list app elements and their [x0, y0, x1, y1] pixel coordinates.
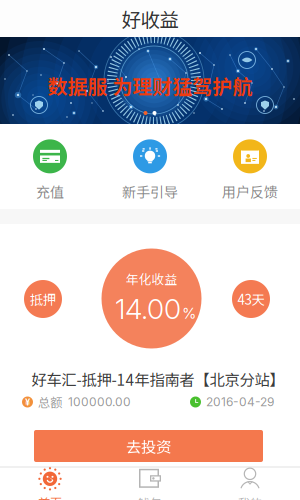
button[interactable]: 抵押	[24, 280, 62, 318]
staticText: 数据服 为理财猛驾护航	[47, 71, 252, 100]
button[interactable]: 我的	[200, 468, 300, 500]
staticText: %	[182, 304, 196, 322]
staticText: 抵押	[30, 289, 56, 309]
staticText: 充值	[36, 181, 64, 202]
staticText: 新手引导	[122, 181, 178, 202]
staticText: 用户反馈	[222, 181, 278, 202]
button[interactable]: 充值	[0, 124, 100, 209]
button[interactable]: 首页	[0, 468, 100, 500]
staticText: 首页	[38, 494, 62, 500]
staticText: 年化收益	[125, 269, 177, 288]
staticText: 我的	[238, 494, 262, 500]
staticText: 100000.00	[68, 395, 131, 409]
button[interactable]: 43天	[232, 280, 270, 318]
staticText: 好车汇-抵押-14年指南者【北京分站】	[31, 368, 284, 390]
button[interactable]: 用户反馈	[200, 124, 300, 209]
staticText: 2016-04-29	[206, 395, 274, 409]
staticText: 去投资	[126, 435, 171, 457]
staticText: 14.00	[115, 292, 181, 326]
staticText: ¥	[25, 396, 30, 408]
staticText: 总额	[38, 393, 62, 411]
button[interactable]: 钱包	[100, 468, 200, 500]
button[interactable]: 去投资	[34, 430, 263, 462]
button[interactable]: 新手引导	[100, 124, 200, 209]
staticText: 43天	[237, 289, 264, 309]
staticText: 钱包	[138, 494, 162, 500]
staticText: 好收益	[121, 4, 178, 32]
